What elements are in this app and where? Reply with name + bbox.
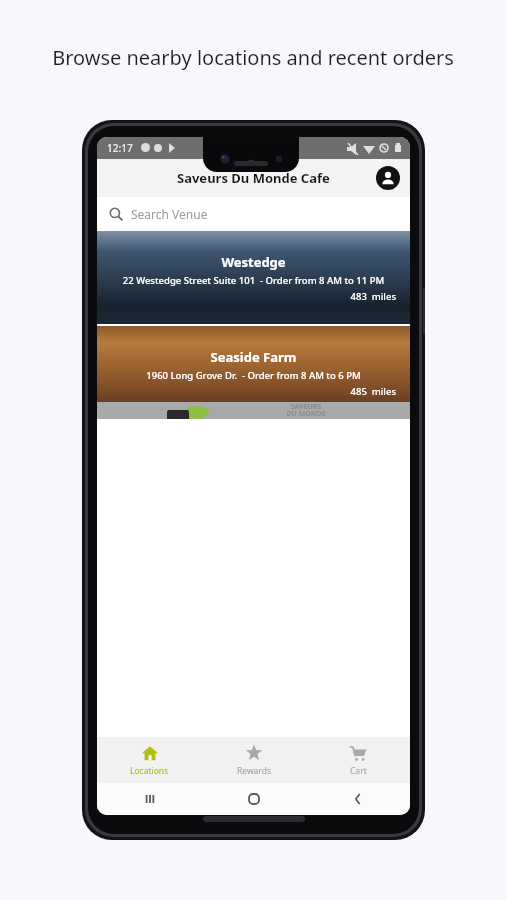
- staticText: 1960 Long Grove Dr. - Order from 8 AM to…: [103, 369, 404, 382]
- staticText: 12:17: [107, 141, 133, 155]
- staticText: Seaside Farm: [103, 348, 404, 366]
- staticText: 485 miles: [103, 385, 396, 398]
- staticText: Search Venue: [131, 206, 208, 222]
- staticText: SAVEURS DU MONDE: [286, 402, 326, 419]
- staticText: Browse nearby locations and recent order…: [0, 44, 506, 71]
- button[interactable]: Westedge: [97, 231, 410, 324]
- staticText: Saveurs Du Monde Cafe: [177, 169, 330, 187]
- staticText: Cart: [350, 765, 367, 777]
- button[interactable]: Home: [202, 792, 306, 806]
- button[interactable]: Rewards: [202, 744, 306, 777]
- staticText: 22 Westedge Street Suite 101 - Order fro…: [103, 274, 404, 287]
- staticText: Locations: [130, 765, 169, 777]
- staticText: 483 miles: [103, 290, 396, 303]
- button[interactable]: Search Venue: [97, 197, 410, 231]
- staticText: Rewards: [237, 765, 272, 777]
- button[interactable]: Account: [376, 166, 400, 190]
- button[interactable]: Cart: [306, 744, 410, 777]
- button[interactable]: Seaside Farm: [97, 326, 410, 419]
- staticText: Westedge: [103, 253, 404, 271]
- button[interactable]: Recents: [97, 792, 202, 806]
- button[interactable]: Locations: [97, 744, 202, 777]
- button[interactable]: Back: [306, 792, 410, 806]
